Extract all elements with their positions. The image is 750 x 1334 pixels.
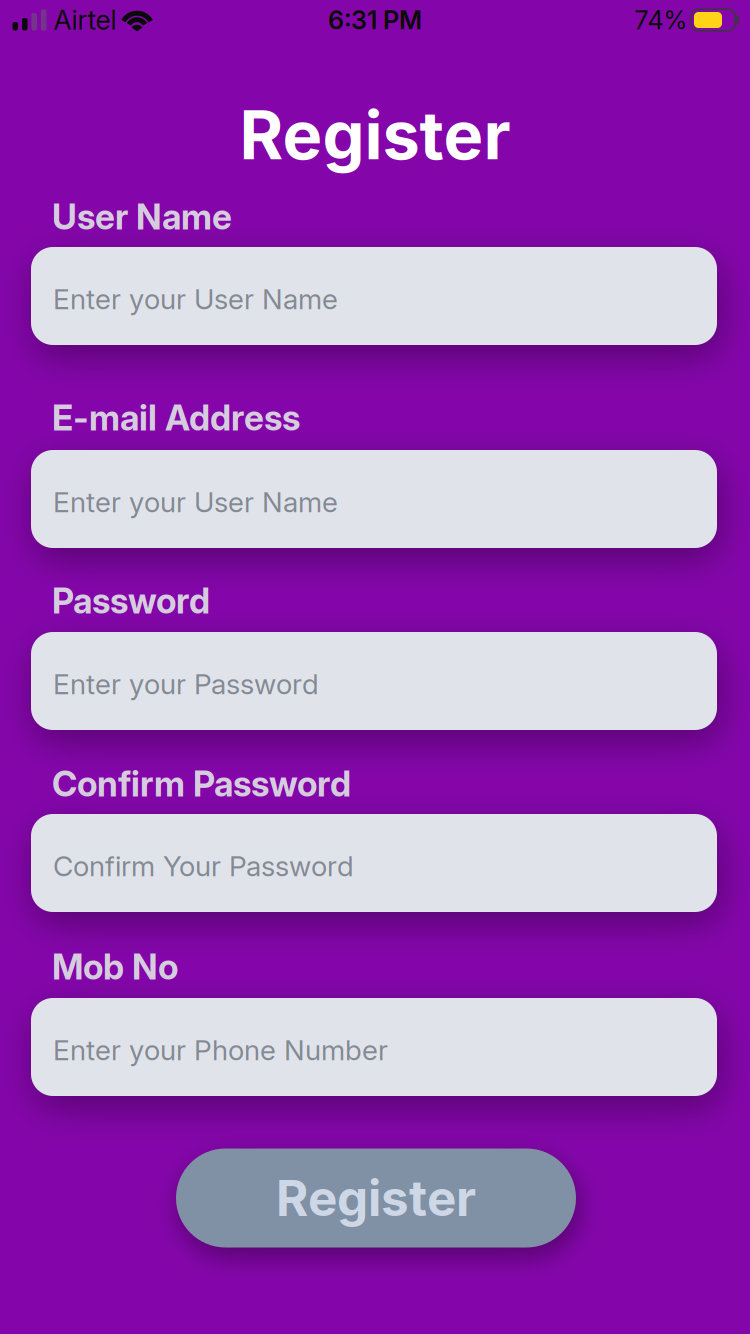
staticText: User Name	[52, 197, 232, 237]
button[interactable]: Enter your Password	[31, 632, 717, 730]
button[interactable]: Enter your Phone Number	[31, 998, 717, 1096]
staticText: Register	[276, 1169, 476, 1227]
button[interactable]: Enter your User Name	[31, 450, 717, 548]
staticText: Enter your Phone Number	[53, 1033, 388, 1066]
staticText: 6:31 PM	[328, 5, 422, 35]
button[interactable]: Register	[176, 1148, 576, 1247]
staticText: Mob No	[52, 947, 178, 987]
staticText: Airtel	[53, 4, 116, 36]
staticText: Password	[52, 581, 210, 621]
button[interactable]: Enter your User Name	[31, 247, 717, 345]
staticText: Enter your User Name	[53, 282, 338, 315]
button[interactable]: Confirm Your Password	[31, 814, 717, 912]
staticText: Confirm Your Password	[53, 849, 354, 882]
staticText: E-mail Address	[52, 398, 300, 438]
staticText: Enter your User Name	[53, 485, 338, 518]
staticText: 74%	[634, 5, 687, 35]
staticText: Enter your Password	[53, 667, 319, 700]
staticText: Confirm Password	[52, 764, 351, 804]
staticText: Register	[239, 96, 510, 174]
